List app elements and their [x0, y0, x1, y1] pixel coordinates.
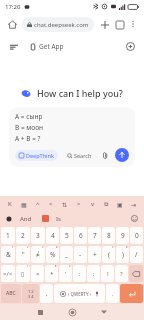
button[interactable]: Menu — [7, 40, 20, 53]
button[interactable]: Send — [115, 148, 129, 162]
button[interactable]: 0 — [130, 227, 143, 244]
button[interactable]: _ — [60, 246, 73, 263]
staticText: ⁵ — [112, 246, 114, 251]
staticText: 1 — [6, 231, 10, 240]
button[interactable]: 3 — [31, 227, 45, 244]
staticText: ¹ — [12, 246, 14, 251]
button[interactable]: Recent apps — [32, 304, 48, 320]
button[interactable]: Key < — [45, 198, 57, 210]
button[interactable]: Key ▣ — [114, 198, 126, 210]
button[interactable]: 1 2 — [22, 284, 39, 303]
button[interactable]: 9 — [116, 227, 129, 244]
staticText: _ — [65, 250, 68, 259]
staticText: 0 — [135, 231, 139, 240]
button[interactable]: Attach file — [100, 150, 111, 161]
staticText: ^ — [36, 200, 40, 208]
button[interactable]: New tab — [98, 18, 111, 31]
staticText: And — [20, 215, 32, 223]
button[interactable]: " — [16, 246, 30, 263]
button[interactable]: % — [46, 246, 59, 263]
button[interactable]: Home — [5, 17, 19, 31]
staticText: ⁴ — [56, 246, 58, 251]
staticText: 3 4 — [28, 294, 34, 299]
button[interactable]: 1 — [1, 227, 15, 244]
button[interactable]: ( — [102, 246, 115, 263]
button[interactable]: Key ^ — [32, 198, 44, 210]
staticText: ▣ — [117, 201, 123, 208]
button[interactable]: Key v — [87, 198, 99, 210]
staticText: A = сынр — [15, 112, 43, 121]
staticText: ▯ — [21, 270, 25, 277]
button[interactable]: =/< — [1, 265, 15, 282]
button[interactable]: Key > — [73, 198, 85, 210]
button[interactable]: * — [45, 265, 58, 282]
staticText: : — [79, 270, 81, 278]
button[interactable]: A = сынр — [9, 107, 135, 167]
button[interactable]: Key ⇅ — [59, 198, 71, 210]
button[interactable]: Enter — [120, 284, 143, 303]
button[interactable]: : — [73, 265, 86, 282]
button[interactable]: Clipboard — [42, 215, 49, 222]
button[interactable]: Search — [63, 150, 96, 161]
button[interactable]: DeepThink — [15, 150, 58, 161]
button[interactable]: ) — [116, 246, 129, 263]
other: Enter — [120, 284, 143, 303]
button[interactable]: ▯ — [16, 265, 30, 282]
staticText: ; — [93, 270, 95, 278]
button[interactable]: chat.deepseek.com — [22, 17, 94, 32]
other: Backspace — [129, 265, 143, 282]
staticText: 8 — [107, 231, 111, 240]
button[interactable]: × — [31, 265, 44, 282]
button[interactable]: Get App — [26, 40, 68, 53]
button[interactable]: ; — [87, 265, 100, 282]
staticText: / — [135, 250, 138, 259]
staticText: Is — [56, 215, 61, 223]
button[interactable]: Home — [64, 304, 80, 320]
button[interactable]: ? — [115, 265, 128, 282]
staticText: How can I help you? — [37, 87, 123, 99]
button[interactable]: Is — [54, 215, 63, 223]
staticText: < — [49, 200, 53, 208]
staticText: ≠ — [36, 250, 40, 259]
staticText: - — [79, 250, 82, 259]
button[interactable]: Backspace — [129, 265, 143, 282]
button[interactable]: New chat — [123, 39, 137, 53]
button[interactable]: - — [74, 246, 87, 263]
button[interactable]: Key ⧉ — [100, 198, 112, 210]
button[interactable]: Space, QWERTY layout — [54, 284, 105, 303]
staticText: chat.deepseek.com — [34, 21, 89, 29]
button[interactable]: ABC — [1, 284, 21, 303]
staticText: ) — [122, 250, 124, 259]
button[interactable]: ≠ — [31, 246, 45, 263]
button[interactable]: More options — [127, 18, 139, 30]
button[interactable]: 4 — [46, 227, 59, 244]
staticText: 5 — [65, 231, 69, 240]
button[interactable]: 6 — [74, 227, 87, 244]
button[interactable]: ' — [59, 265, 72, 282]
button[interactable]: 8 — [102, 227, 115, 244]
button[interactable]: Key ▦ — [18, 198, 30, 210]
staticText: 3 — [36, 231, 40, 240]
staticText: ABC — [6, 290, 16, 297]
button[interactable]: . — [106, 284, 119, 303]
button[interactable]: 7 — [88, 227, 101, 244]
button[interactable]: Key ⇥ — [128, 198, 140, 210]
button[interactable]: Back — [96, 304, 112, 320]
button[interactable]: , — [40, 284, 53, 303]
button[interactable]: And — [18, 215, 34, 223]
button[interactable]: & — [1, 246, 15, 263]
staticText: & — [6, 250, 11, 259]
button[interactable]: Emoji — [130, 214, 139, 223]
button[interactable]: ! — [101, 265, 114, 282]
button[interactable]: Tabs — [113, 18, 126, 31]
staticText: 9 — [121, 231, 125, 240]
button[interactable]: + — [88, 246, 101, 263]
staticText: . — [112, 290, 114, 298]
button[interactable]: 2 — [16, 227, 30, 244]
button[interactable]: Key K — [4, 198, 16, 210]
button[interactable]: 5 — [60, 227, 73, 244]
staticText: > — [77, 200, 81, 208]
button[interactable]: Voice typing — [5, 215, 13, 223]
button[interactable]: / — [130, 246, 143, 263]
staticText: ⁶ — [126, 246, 128, 251]
